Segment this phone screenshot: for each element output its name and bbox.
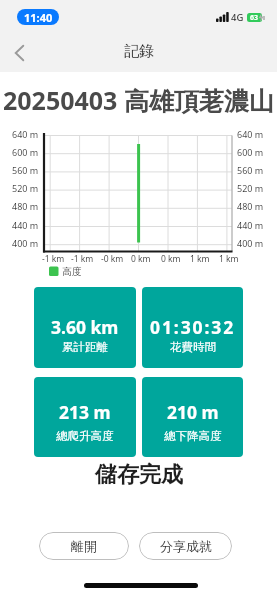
staticText: 480 m — [237, 200, 264, 212]
staticText: 520 m — [12, 182, 39, 194]
staticText: 累計距離 — [62, 340, 108, 354]
button[interactable]: 210 m — [142, 377, 243, 457]
staticText: 600 m — [12, 146, 39, 158]
staticText: 高度 — [62, 265, 82, 278]
staticText: 440 m — [12, 219, 39, 231]
staticText: 520 m — [237, 182, 264, 194]
staticText: 0 km — [131, 253, 151, 265]
staticText: 20250403 高雄頂荖濃山 — [3, 83, 274, 117]
staticText: 3.60 km — [51, 315, 119, 339]
staticText: 480 m — [12, 200, 39, 212]
staticText: 63 — [250, 13, 259, 22]
staticText: 1 km — [190, 253, 210, 265]
staticText: 560 m — [237, 164, 264, 176]
button[interactable]: 213 m — [34, 377, 136, 457]
staticText: 01:30:32 — [150, 315, 236, 339]
button[interactable] — [6, 40, 32, 66]
staticText: 400 m — [12, 237, 39, 249]
staticText: 0 km — [161, 253, 181, 265]
button[interactable]: 01:30:32 — [142, 287, 243, 368]
staticText: -0 km — [101, 253, 124, 265]
staticText: 600 m — [237, 146, 264, 158]
staticText: 離開 — [71, 538, 97, 554]
staticText: 640 m — [12, 128, 39, 140]
staticText: -1 km — [42, 253, 65, 265]
button[interactable]: 離開 — [39, 532, 129, 560]
staticText: 213 m — [59, 400, 111, 424]
staticText: -1 km — [71, 253, 94, 265]
staticText: 1 km — [219, 253, 239, 265]
button[interactable]: 3.60 km — [34, 287, 136, 368]
staticText: 總爬升高度 — [56, 429, 114, 443]
staticText: 640 m — [237, 128, 264, 140]
staticText: 560 m — [12, 164, 39, 176]
button[interactable]: 分享成就 — [139, 532, 232, 560]
staticText: 400 m — [237, 237, 264, 249]
staticText: 記錄 — [124, 42, 154, 61]
staticText: 11:40 — [24, 10, 53, 25]
staticText: 4G — [231, 11, 244, 24]
staticText: 花費時間 — [170, 340, 216, 354]
staticText: 總下降高度 — [164, 429, 222, 443]
staticText: 儲存完成 — [95, 461, 183, 489]
staticText: 440 m — [237, 219, 264, 231]
staticText: 210 m — [167, 400, 219, 424]
staticText: 分享成就 — [160, 538, 212, 554]
